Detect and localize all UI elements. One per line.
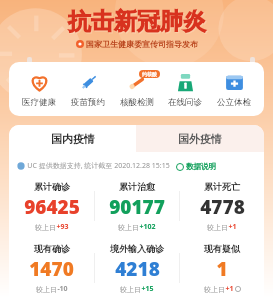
staticText: 较上日 xyxy=(35,223,56,232)
button[interactable]: 国外疫情 xyxy=(136,125,264,152)
staticText: 较上日 xyxy=(120,285,141,294)
staticText: 96425 xyxy=(24,194,80,220)
staticText: 现有疑似 xyxy=(204,243,240,254)
button[interactable]: 现有疑似 xyxy=(180,242,264,294)
staticText: 1470 xyxy=(29,256,74,282)
staticText: +1 xyxy=(228,222,237,232)
staticText: 核酸检测 xyxy=(120,97,154,108)
button[interactable]: 累计确诊 xyxy=(9,180,94,232)
staticText: 较上日 xyxy=(204,285,225,294)
button[interactable]: 医疗健康 xyxy=(20,70,58,108)
staticText: 累计确诊 xyxy=(34,181,70,192)
staticText: 较上日 xyxy=(118,223,139,232)
staticText: 累计死亡 xyxy=(204,181,240,192)
staticText: 疫苗预约 xyxy=(71,97,105,108)
staticText: -10 xyxy=(57,284,68,294)
staticText: 90177 xyxy=(109,194,165,220)
staticText: +102 xyxy=(139,222,156,232)
button[interactable]: 在线问诊 xyxy=(166,70,204,108)
staticText: 1 xyxy=(216,256,228,282)
staticText: 较上日 xyxy=(36,285,57,294)
staticText: 抗击新冠肺炎 xyxy=(69,8,207,37)
button[interactable]: 约核酸 xyxy=(118,70,156,108)
staticText: +15 xyxy=(141,284,154,294)
staticText: 累计治愈 xyxy=(119,181,155,192)
button[interactable]: 疫苗预约 xyxy=(69,70,107,108)
staticText: 约核酸 xyxy=(142,71,157,77)
staticText: 抗击新冠肺炎 xyxy=(68,7,206,36)
staticText: 国外疫情 xyxy=(178,132,222,146)
button[interactable]: 数据说明 xyxy=(176,162,216,171)
staticText: 公立体检 xyxy=(217,97,251,108)
button[interactable]: 累计死亡 xyxy=(180,180,264,232)
staticText: 在线问诊 xyxy=(168,97,202,108)
staticText: +1 xyxy=(225,284,234,294)
button[interactable]: 公立体检 xyxy=(215,70,253,108)
staticText: 数据说明 xyxy=(186,162,216,171)
staticText: 医疗健康 xyxy=(22,97,56,108)
button[interactable]: 国内疫情 xyxy=(9,125,136,152)
staticText: +93 xyxy=(56,222,69,232)
staticText: 较上日 xyxy=(207,223,228,232)
staticText: UC 提供数据支持, 统计截至 2020.12.28 15:15 xyxy=(27,161,170,171)
staticText: 4218 xyxy=(115,256,160,282)
button[interactable]: 累计治愈 xyxy=(95,180,179,232)
staticText: 现有确诊 xyxy=(34,243,70,254)
button[interactable]: 现有确诊 xyxy=(9,242,94,294)
button[interactable]: 境外输入确诊 xyxy=(95,242,179,294)
staticText: 4778 xyxy=(200,194,245,220)
staticText: 国家卫生健康委宣传司指导发布 xyxy=(86,39,198,49)
staticText: 境外输入确诊 xyxy=(110,243,164,254)
staticText: 国内疫情 xyxy=(51,132,95,146)
